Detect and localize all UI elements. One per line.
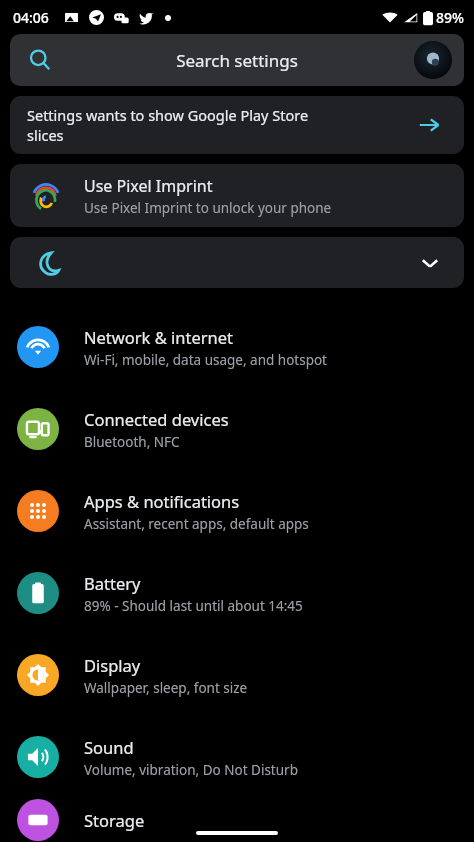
button[interactable]: Use Pixel Imprint — [10, 164, 464, 227]
staticText: Display — [84, 654, 141, 676]
staticText: Assistant, recent apps, default apps — [84, 515, 309, 533]
staticText: Settings wants to show Google Play Store… — [27, 105, 327, 145]
staticText: Battery — [84, 572, 141, 594]
button[interactable]: Apps & notifications — [0, 470, 474, 552]
staticText: Connected devices — [84, 408, 229, 430]
button[interactable]: Sound — [0, 716, 474, 798]
button[interactable]: Network & internet — [0, 306, 474, 388]
button[interactable]: Display — [0, 634, 474, 716]
staticText: Bluetooth, NFC — [84, 433, 180, 451]
staticText: Search settings — [176, 49, 298, 72]
staticText: Wallpaper, sleep, font size — [84, 679, 248, 697]
staticText: Network & internet — [84, 326, 234, 348]
staticText: Apps & notifications — [84, 490, 240, 512]
staticText: Sound — [84, 736, 134, 758]
button[interactable]: Account — [414, 41, 452, 79]
button[interactable]: Connected devices — [0, 388, 474, 470]
staticText: 89% - Should last until about 14:45 — [84, 597, 303, 615]
staticText: Use Pixel Imprint — [84, 175, 213, 197]
button[interactable]: Settings wants to show Google Play Store… — [10, 96, 464, 154]
button[interactable]: Battery — [0, 552, 474, 634]
staticText: 89% — [436, 8, 464, 27]
staticText: Storage — [84, 809, 145, 831]
staticText: Wi-Fi, mobile, data usage, and hotspot — [84, 351, 327, 369]
staticText: Volume, vibration, Do Not Disturb — [84, 761, 298, 779]
button[interactable]: Storage — [0, 798, 474, 842]
staticText: Use Pixel Imprint to unlock your phone — [84, 199, 332, 217]
button[interactable]: Search settings — [10, 34, 464, 86]
staticText: 04:06 — [13, 8, 49, 27]
button[interactable]: Do Not Disturb — [10, 237, 464, 288]
